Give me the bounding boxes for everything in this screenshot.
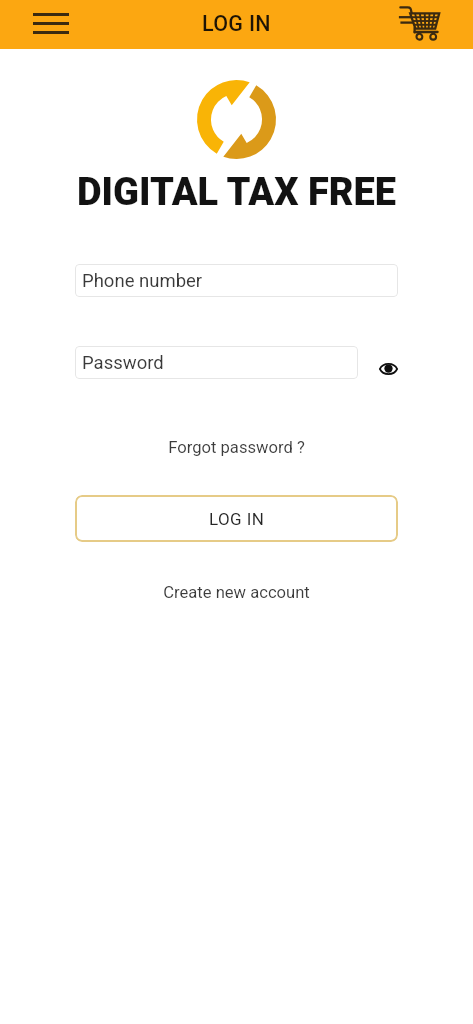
button[interactable]: Create new account xyxy=(0,583,473,602)
button[interactable]: Forgot password ? xyxy=(0,438,473,457)
button[interactable]: Menu xyxy=(29,1,73,45)
staticText: Password xyxy=(82,352,164,374)
button[interactable]: Phone number xyxy=(75,264,398,297)
staticText: LOG IN xyxy=(202,11,271,36)
staticText: LOG IN xyxy=(209,509,265,529)
staticText: DIGITAL TAX FREE xyxy=(0,170,473,215)
button[interactable]: Show password xyxy=(370,357,406,381)
button[interactable]: Password xyxy=(75,346,358,379)
button[interactable]: Cart xyxy=(398,2,440,44)
staticText: Phone number xyxy=(82,270,203,292)
button[interactable]: LOG IN xyxy=(75,495,398,542)
